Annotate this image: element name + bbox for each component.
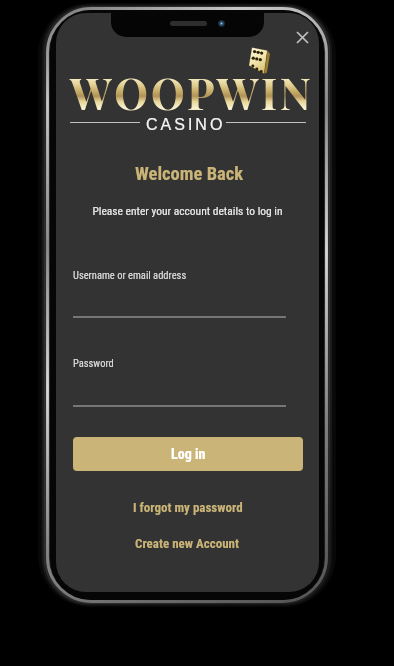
staticText: Log in [171,446,206,462]
staticText: Welcome Back [135,163,244,185]
button[interactable]: Log in [73,437,303,471]
button[interactable]: I forgot my password [123,497,253,518]
staticText: WOOPWIN [70,63,314,120]
staticText: CASINO [146,116,226,134]
staticText: Please enter your account details to log… [92,204,283,217]
button[interactable]: Create new Account [125,533,250,554]
button[interactable]: Close [290,25,314,49]
staticText: Password [73,357,114,369]
staticText: I forgot my password [133,500,243,515]
staticText: Username or email address [73,269,187,281]
staticText: Create new Account [135,536,240,551]
